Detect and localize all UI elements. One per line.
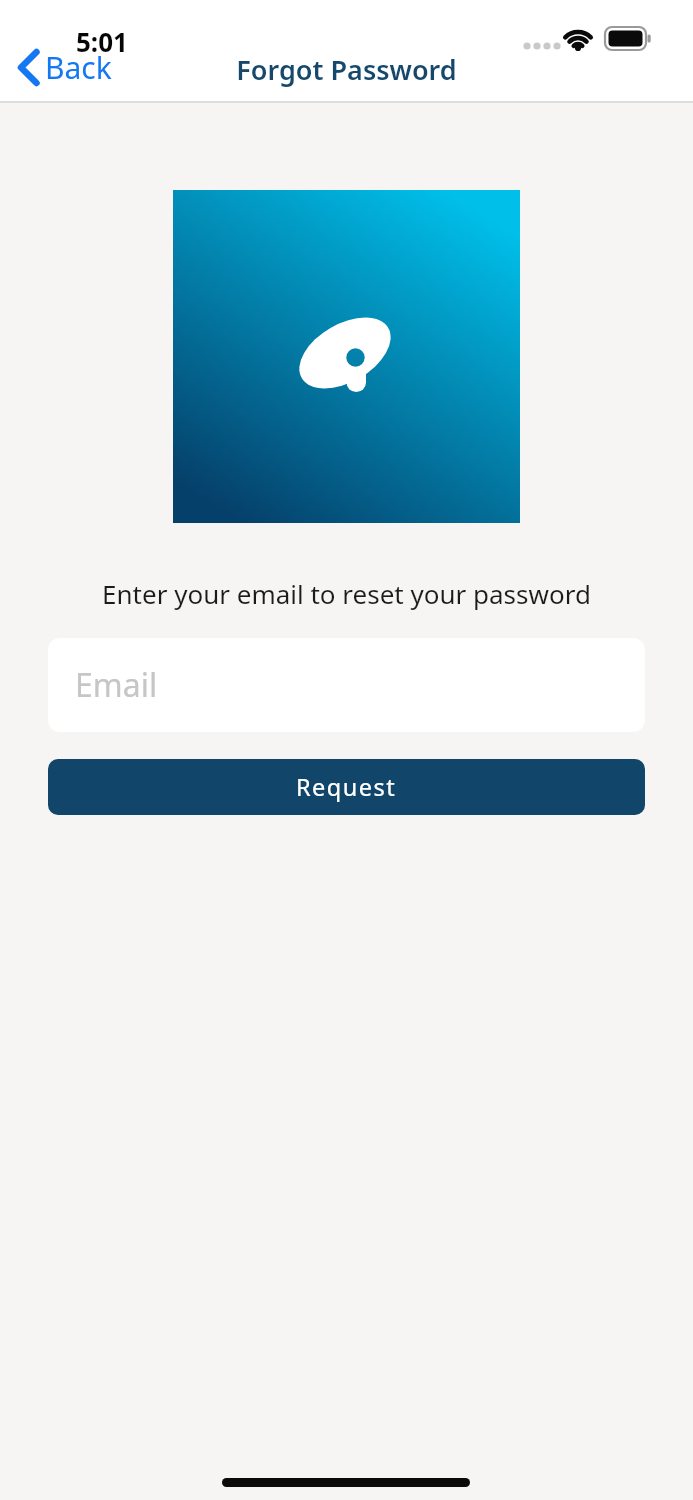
staticText: Email: [75, 663, 158, 707]
button[interactable]: Request: [48, 759, 645, 815]
staticText: Back: [45, 47, 112, 88]
staticText: Forgot Password: [0, 51, 693, 88]
staticText: Enter your email to reset your password: [0, 576, 693, 611]
staticText: Request: [296, 771, 397, 803]
button[interactable]: Email: [48, 638, 645, 732]
staticText: 5:01: [76, 24, 128, 59]
button[interactable]: Back: [13, 46, 112, 88]
